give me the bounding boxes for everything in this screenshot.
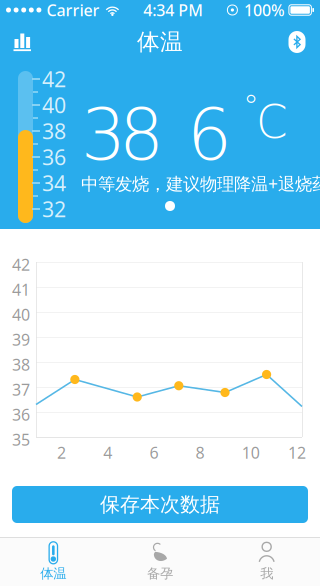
staticText: 3 xyxy=(81,94,126,176)
staticText: 4 xyxy=(103,442,112,463)
button[interactable]: Bluetooth xyxy=(274,20,320,64)
staticText: 100% xyxy=(244,0,285,21)
staticText: 36 xyxy=(42,143,66,171)
staticText: 保存本次数据 xyxy=(100,492,220,517)
staticText: 38 xyxy=(42,117,66,145)
staticText: 我 xyxy=(260,565,273,582)
staticText: 体温 xyxy=(40,565,66,582)
staticText: 37 xyxy=(12,379,30,400)
staticText: 6 xyxy=(149,442,158,463)
staticText: 6 xyxy=(187,94,232,176)
button[interactable]: History xyxy=(0,20,46,64)
staticText: C xyxy=(256,96,288,149)
staticText: 32 xyxy=(42,195,66,223)
staticText: 中等发烧，建议物理降温+退烧药，考 xyxy=(81,172,320,195)
staticText: 8 xyxy=(119,94,164,176)
button[interactable]: 保存本次数据 xyxy=(12,486,308,523)
staticText: 12 xyxy=(288,442,306,463)
staticText: 41 xyxy=(12,279,30,300)
staticText: 36 xyxy=(12,404,30,425)
staticText: 8 xyxy=(196,442,205,463)
staticText: 10 xyxy=(242,442,260,463)
staticText: 34 xyxy=(42,169,66,197)
staticText: 备孕 xyxy=(147,565,173,582)
button[interactable]: 我 xyxy=(213,537,320,586)
button[interactable]: 体温 xyxy=(0,537,107,586)
staticText: 40 xyxy=(12,304,30,325)
staticText: Carrier xyxy=(46,0,99,21)
staticText: 体温 xyxy=(137,28,183,56)
button[interactable]: 备孕 xyxy=(107,537,213,586)
staticText: ° xyxy=(243,88,259,125)
staticText: 38 xyxy=(12,354,30,375)
staticText: 40 xyxy=(42,91,66,119)
staticText: 35 xyxy=(12,429,30,450)
staticText: 42 xyxy=(42,65,66,93)
staticText: 39 xyxy=(12,329,30,350)
staticText: 2 xyxy=(57,442,66,463)
staticText: 4:34 PM xyxy=(143,0,203,21)
staticText: 42 xyxy=(12,254,30,275)
